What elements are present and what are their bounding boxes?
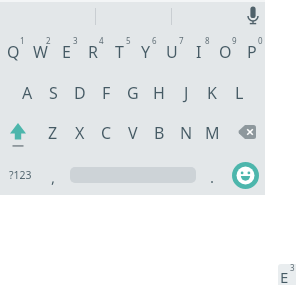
staticText: 8 xyxy=(205,35,210,46)
staticText: L xyxy=(235,82,244,104)
button[interactable] xyxy=(242,4,264,28)
staticText: K xyxy=(207,82,217,104)
staticText: Y xyxy=(141,41,151,63)
staticText: 3 xyxy=(290,262,295,272)
button[interactable]: B xyxy=(146,119,172,147)
staticText: 1 xyxy=(20,35,25,46)
button[interactable]: J xyxy=(173,79,199,107)
button[interactable]: K xyxy=(199,79,225,107)
staticText: J xyxy=(184,82,189,104)
staticText: 2 xyxy=(46,35,51,46)
staticText: Z xyxy=(48,122,58,144)
staticText: , xyxy=(51,167,56,187)
staticText: M xyxy=(205,122,220,144)
staticText: 6 xyxy=(152,35,157,46)
staticText: 5 xyxy=(126,35,131,46)
button[interactable] xyxy=(0,112,40,153)
staticText: P xyxy=(247,41,257,63)
button[interactable]: I xyxy=(186,38,212,66)
staticText: W xyxy=(33,41,48,63)
button[interactable] xyxy=(232,162,259,189)
staticText: B xyxy=(154,122,165,144)
staticText: V xyxy=(128,122,138,144)
button[interactable]: W xyxy=(27,38,53,66)
staticText: 9 xyxy=(232,35,237,46)
button[interactable]: P xyxy=(239,38,265,66)
staticText: I xyxy=(196,41,202,63)
button[interactable]: U xyxy=(159,38,185,66)
button[interactable]: D xyxy=(67,79,93,107)
button[interactable]: T xyxy=(106,38,132,66)
button[interactable]: Z xyxy=(40,119,66,147)
button[interactable]: ?123 xyxy=(7,161,33,189)
button[interactable]: A xyxy=(14,79,40,107)
button[interactable]: E xyxy=(53,38,79,66)
staticText: U xyxy=(166,41,178,63)
button[interactable]: M xyxy=(199,119,225,147)
staticText: O xyxy=(219,41,232,63)
staticText: D xyxy=(74,82,86,104)
staticText: X xyxy=(75,122,85,144)
staticText: E xyxy=(62,41,71,63)
button[interactable]: . xyxy=(199,163,225,191)
button[interactable]: H xyxy=(146,79,172,107)
staticText: E xyxy=(280,267,289,285)
staticText: N xyxy=(180,122,193,144)
button[interactable]: F xyxy=(93,79,119,107)
button[interactable]: X xyxy=(67,119,93,147)
button[interactable]: C xyxy=(93,119,119,147)
button[interactable]: O xyxy=(212,38,238,66)
button[interactable]: R xyxy=(80,38,106,66)
staticText: F xyxy=(102,82,111,104)
staticText: S xyxy=(49,82,58,104)
button[interactable]: G xyxy=(120,79,146,107)
staticText: R xyxy=(88,41,98,63)
staticText: 7 xyxy=(179,35,184,46)
staticText: G xyxy=(127,82,139,104)
staticText: A xyxy=(22,82,33,104)
staticText: . xyxy=(210,167,215,187)
staticText: C xyxy=(101,122,112,144)
button[interactable]: Q xyxy=(0,38,26,66)
button[interactable]: , xyxy=(40,163,66,191)
staticText: Q xyxy=(7,41,20,63)
button[interactable]: Y xyxy=(133,38,159,66)
staticText: 0 xyxy=(258,35,263,46)
button[interactable] xyxy=(226,112,265,153)
staticText: H xyxy=(153,82,165,104)
staticText: T xyxy=(115,41,124,63)
staticText: 4 xyxy=(99,35,104,46)
button[interactable]: V xyxy=(120,119,146,147)
button[interactable]: L xyxy=(226,79,252,107)
staticText: ?123 xyxy=(9,168,32,182)
button[interactable]: N xyxy=(173,119,199,147)
button[interactable]: S xyxy=(40,79,66,107)
staticText: 3 xyxy=(73,35,78,46)
